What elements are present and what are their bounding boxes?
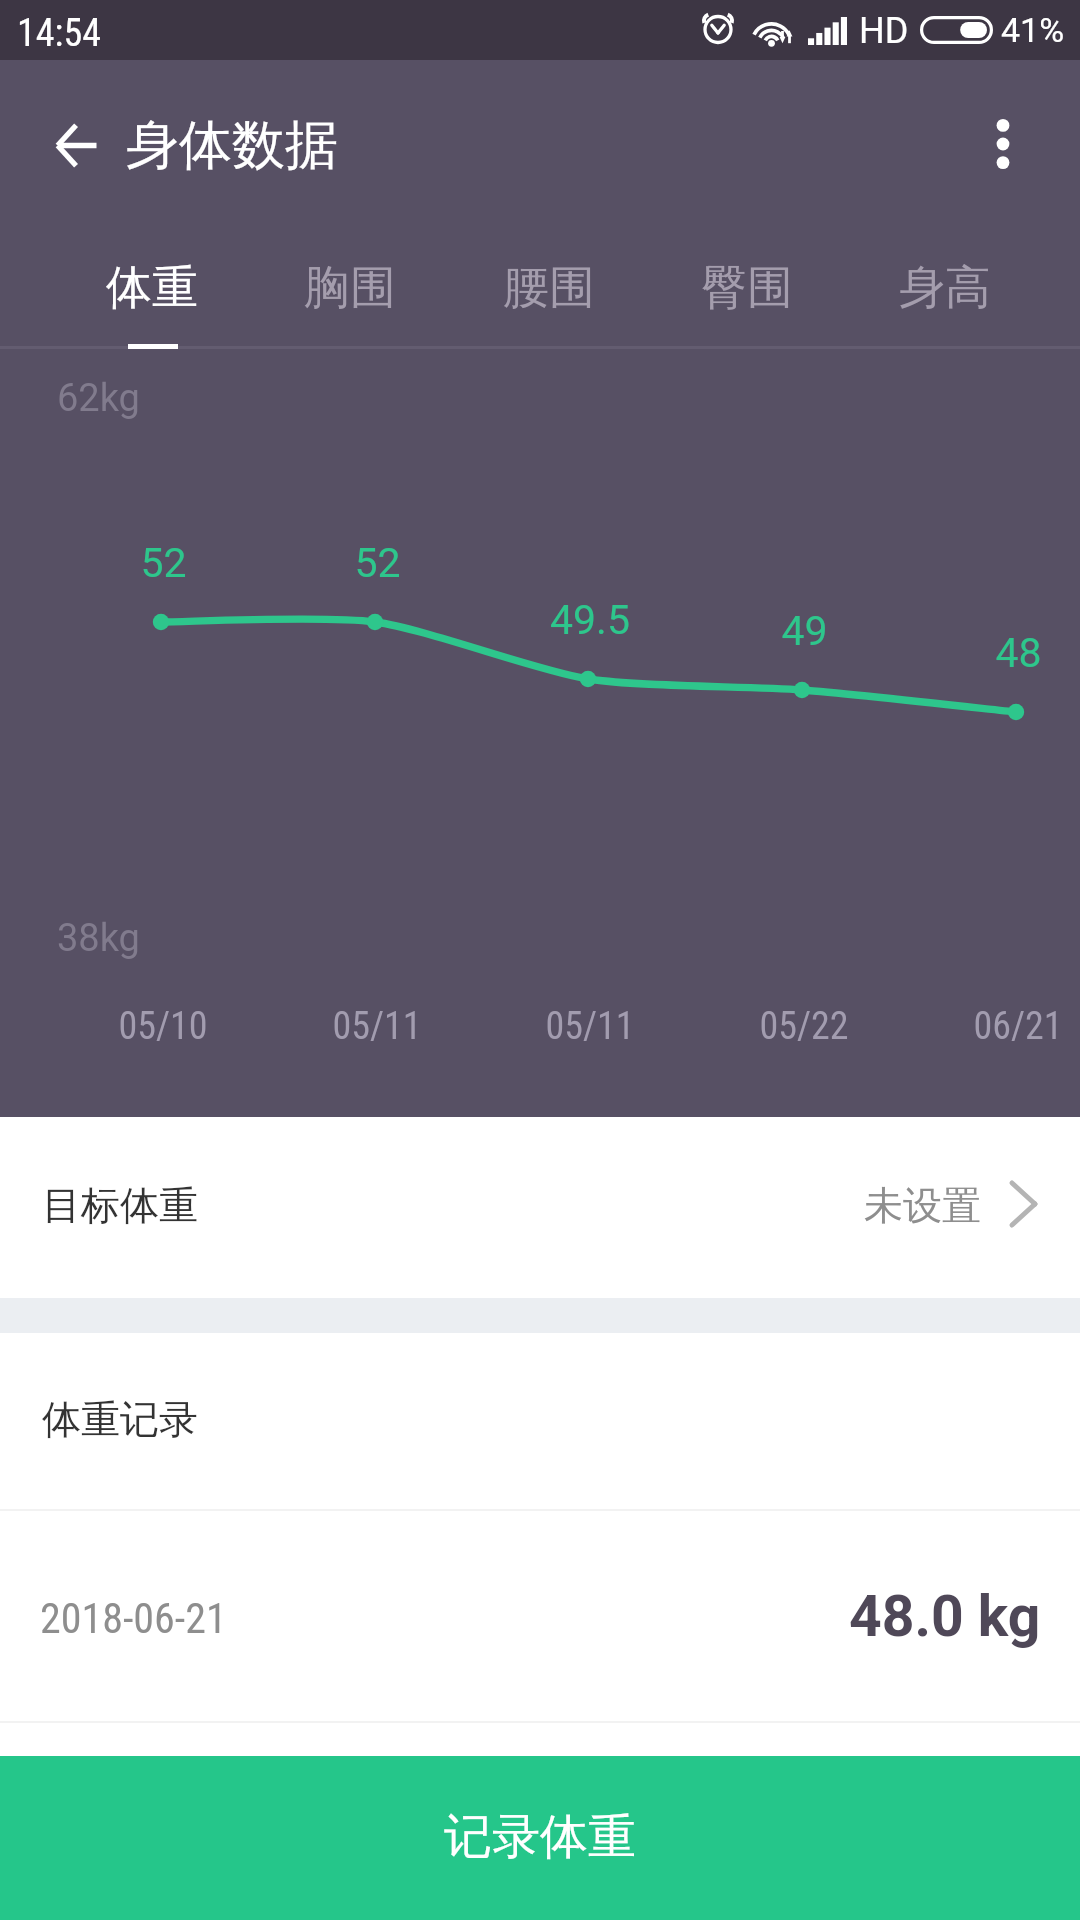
button[interactable]: 身高 xyxy=(846,230,1044,349)
staticText: 05/22 xyxy=(759,1004,849,1049)
staticText: 49.5 xyxy=(550,596,630,644)
staticText: HD xyxy=(859,10,909,52)
staticText: 臀围 xyxy=(701,259,793,317)
staticText: 52 xyxy=(140,539,187,587)
staticText: 未设置 xyxy=(864,1181,981,1230)
button[interactable]: 记录体重 xyxy=(0,1756,1080,1920)
staticText: 38kg xyxy=(57,916,140,961)
staticText: 41% xyxy=(1001,10,1065,50)
staticText: 05/11 xyxy=(332,1004,422,1049)
staticText: 目标体重 xyxy=(42,1181,198,1230)
button[interactable]: 胸围 xyxy=(251,230,449,349)
staticText: 体重 xyxy=(106,259,198,317)
staticText: 2018-06-21 xyxy=(40,1594,227,1643)
staticText: 48 xyxy=(995,629,1042,677)
button[interactable]: 臀围 xyxy=(648,230,846,349)
staticText: 52 xyxy=(354,539,401,587)
button[interactable]: 2018-06-21 xyxy=(0,1511,1080,1721)
staticText: 05/10 xyxy=(118,1004,208,1049)
staticText: 身体数据 xyxy=(126,112,338,179)
staticText: 体重记录 xyxy=(42,1395,198,1444)
staticText: 14:54 xyxy=(17,11,101,56)
staticText: 62kg xyxy=(57,376,140,421)
staticText: 记录体重 xyxy=(444,1807,636,1867)
button[interactable]: 腰围 xyxy=(450,230,648,349)
staticText: 身高 xyxy=(899,259,991,317)
staticText: 胸围 xyxy=(304,259,396,317)
staticText: 06/21 xyxy=(973,1004,1063,1049)
button[interactable]: 体重 xyxy=(53,230,251,349)
button[interactable]: More options xyxy=(963,104,1043,184)
button[interactable]: 目标体重 xyxy=(0,1117,1080,1298)
staticText: 腰围 xyxy=(503,259,595,317)
staticText: 05/11 xyxy=(545,1004,635,1049)
button[interactable]: Back xyxy=(38,107,114,183)
staticText: 48.0 kg xyxy=(849,1583,1041,1650)
staticText: 49 xyxy=(781,607,828,655)
